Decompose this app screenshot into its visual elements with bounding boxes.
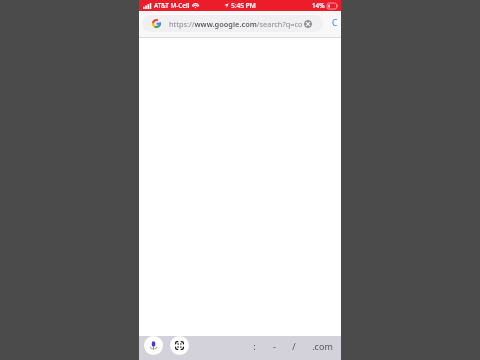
staticText: https://www.google.com/search?q=co	[169, 19, 303, 29]
button[interactable]: .com	[310, 337, 335, 355]
staticText: 5:45 PM	[231, 1, 256, 10]
button[interactable]: Scan code	[170, 336, 189, 355]
button[interactable]: /	[290, 337, 298, 355]
staticText: -	[273, 340, 276, 352]
staticText: /	[292, 340, 296, 352]
button[interactable]: Clear text	[304, 20, 312, 28]
staticText: .com	[312, 340, 333, 352]
staticText: Cancel	[332, 17, 341, 29]
staticText: :	[253, 340, 256, 352]
staticText: 14%	[312, 1, 325, 10]
button[interactable]: Cancel	[332, 17, 341, 29]
button[interactable]: -	[271, 337, 278, 355]
button[interactable]: :	[251, 337, 258, 355]
button[interactable]: https://www.google.com/search?q=co	[142, 15, 323, 32]
button[interactable]: Voice search	[144, 336, 163, 355]
staticText: AT&T M-Cell	[154, 1, 190, 10]
